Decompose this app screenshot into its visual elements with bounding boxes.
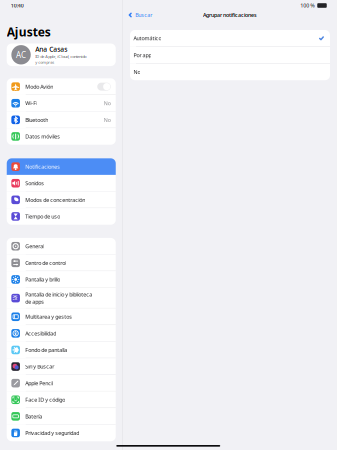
staticText: Apple Pencil [25,380,53,387]
button[interactable]: Buscar [123,8,152,22]
staticText: Pantalla y brillo [25,276,60,283]
button[interactable]: Apple Pencil [7,375,116,391]
staticText: Centro de control [25,259,66,266]
staticText: y compras [35,59,54,65]
staticText: Bluetooth [25,116,48,123]
button[interactable]: Pantalla de inicio y biblioteca [7,288,116,308]
button[interactable]: AC [7,43,116,66]
button[interactable]: Notificaciones [7,158,116,175]
staticText: Pantalla de inicio y biblioteca [25,291,92,298]
staticText: Datos móviles [25,133,60,140]
staticText: Face ID y código [25,396,65,403]
staticText: No [104,116,111,123]
staticText: ID de Apple, iCloud, contenido [35,54,86,59]
button[interactable]: Multitarea y gestos [7,308,116,325]
staticText: No [104,100,111,107]
button[interactable]: Accesibilidad [7,325,116,342]
staticText: 100 % [300,2,315,9]
button[interactable]: Sonidos [7,175,116,191]
staticText: Accesibilidad [25,330,56,337]
staticText: AC [16,49,26,60]
button[interactable]: Centro de control [7,254,116,271]
button[interactable]: Modo Avión [7,78,116,95]
button[interactable]: Datos móviles [7,128,116,145]
staticText: Sonidos [25,180,44,187]
staticText: Tiempo de uso [25,213,60,220]
staticText: Privacidad y seguridad [25,429,79,436]
staticText: Modos de concentración [25,196,85,203]
staticText: No [133,68,140,76]
staticText: 10:40 [11,2,24,9]
button[interactable]: Siri y Buscar [7,358,116,375]
staticText: General [25,243,44,250]
button[interactable]: General [7,238,116,254]
staticText: Fondo de pantalla [25,346,67,353]
staticText: Por app [133,52,151,59]
button[interactable]: Wi-Fi [7,95,116,111]
button[interactable]: Batería [7,408,116,425]
button[interactable]: Modos de concentración [7,191,116,208]
staticText: Buscar [135,11,152,19]
staticText: Ajustes [7,24,51,40]
staticText: Agrupar notificaciones [203,11,257,19]
button[interactable]: No [130,64,330,80]
button[interactable]: Automático [130,30,330,46]
button[interactable]: Pantalla y brillo [7,271,116,288]
staticText: de apps [25,298,44,305]
button[interactable]: Tiempo de uso [7,208,116,225]
button[interactable]: Privacidad y seguridad [7,425,116,441]
staticText: Batería [25,413,42,420]
staticText: Siri y Buscar [25,363,54,370]
button[interactable]: Bluetooth [7,111,116,128]
button[interactable]: Por app [130,47,330,63]
staticText: Wi-Fi [25,100,37,107]
staticText: Notificaciones [25,163,60,170]
staticText: Ana Casas [35,45,67,54]
staticText: Modo Avión [25,83,53,90]
button[interactable]: Fondo de pantalla [7,342,116,358]
staticText: Multitarea y gestos [25,313,72,320]
button[interactable]: Face ID y código [7,391,116,408]
staticText: Automático [133,35,161,42]
